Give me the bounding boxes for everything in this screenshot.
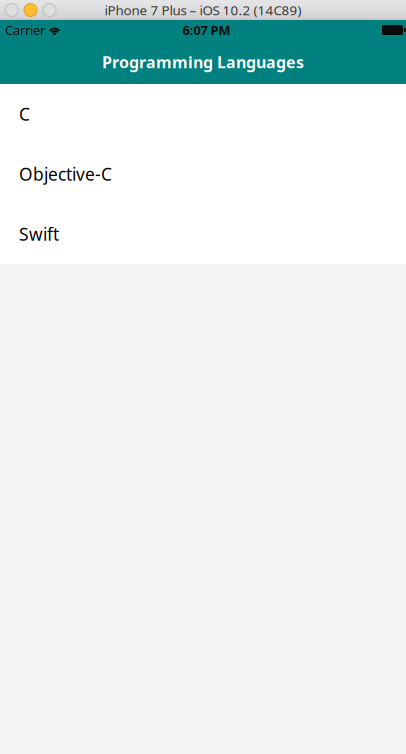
staticText: C: [19, 102, 30, 126]
button[interactable]: C: [0, 84, 406, 144]
button[interactable]: Close: [5, 3, 18, 16]
staticText: Carrier: [5, 21, 45, 39]
staticText: iPhone 7 Plus – iOS 10.2 (14C89): [104, 1, 301, 19]
staticText: Objective-C: [19, 162, 112, 186]
button[interactable]: Zoom: [43, 3, 56, 16]
staticText: Swift: [19, 222, 59, 246]
button[interactable]: Swift: [0, 204, 406, 264]
staticText: Programming Languages: [102, 51, 304, 73]
button[interactable]: Minimize: [24, 3, 37, 16]
staticText: 6:07 PM: [182, 21, 230, 39]
button[interactable]: Objective-C: [0, 144, 406, 204]
